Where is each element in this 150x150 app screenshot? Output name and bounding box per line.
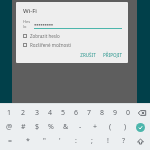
staticText: 1 — [7, 108, 12, 118]
button[interactable]: 7 — [83, 106, 96, 120]
button[interactable]: ) — [118, 120, 133, 134]
staticText: ' — [59, 136, 61, 146]
button[interactable]: ' — [52, 134, 68, 148]
staticText: * — [26, 136, 30, 146]
button[interactable]: ZRUŠIT — [79, 51, 97, 59]
button[interactable]: 4 — [44, 106, 57, 120]
staticText: Wi-Fi — [23, 7, 37, 15]
staticText: ZRUŠIT — [80, 52, 96, 58]
button[interactable]: Zobrazit heslo — [23, 33, 123, 39]
staticText: = — [8, 136, 13, 146]
button[interactable]: PŘIPOJIT — [102, 51, 123, 59]
button[interactable]: 1 — [2, 106, 16, 120]
button[interactable]: # — [16, 120, 30, 134]
button[interactable]: + — [88, 120, 103, 134]
button[interactable]: 3 — [30, 106, 44, 120]
staticText: # — [21, 122, 26, 132]
button[interactable]: ! — [100, 134, 116, 148]
button[interactable]: 2 — [16, 106, 30, 120]
button[interactable]: Hes — [23, 19, 122, 29]
staticText: 2 — [21, 108, 26, 118]
button[interactable]: ( — [103, 120, 118, 134]
staticText: 8 — [100, 108, 105, 118]
button[interactable]: 5 — [57, 106, 70, 120]
button[interactable]: ? — [116, 134, 132, 148]
button[interactable]: : — [68, 134, 84, 148]
button[interactable]: * — [19, 134, 36, 148]
staticText: ( — [109, 122, 112, 132]
staticText: 0 — [126, 108, 131, 118]
button[interactable]: & — [58, 120, 73, 134]
button[interactable]: Shift — [132, 134, 148, 148]
button[interactable]: $ — [30, 120, 44, 134]
staticText: 7 — [87, 108, 92, 118]
staticText: ) — [124, 122, 127, 132]
button[interactable]: Rozšířené možnosti — [23, 42, 123, 48]
button[interactable]: ; — [84, 134, 100, 148]
staticText: @ — [6, 122, 13, 132]
staticText: Zobrazit heslo — [30, 33, 60, 39]
staticText: ! — [107, 136, 109, 146]
staticText: 6 — [74, 108, 79, 118]
staticText: - — [79, 122, 82, 132]
staticText: % — [48, 122, 54, 132]
button[interactable]: - — [73, 120, 88, 134]
staticText: $ — [35, 122, 40, 132]
button[interactable]: Backspace — [135, 106, 148, 120]
button[interactable]: @ — [2, 120, 16, 134]
staticText: lo — [23, 24, 27, 29]
button[interactable]: " — [36, 134, 52, 148]
staticText: " — [43, 136, 46, 146]
button[interactable]: Enter — [133, 120, 148, 134]
staticText: ? — [122, 136, 126, 146]
button[interactable]: 0 — [122, 106, 135, 120]
staticText: : — [75, 136, 77, 146]
button[interactable]: = — [2, 134, 19, 148]
staticText: ; — [91, 136, 93, 146]
staticText: 4 — [48, 108, 53, 118]
staticText: Hes — [23, 19, 31, 24]
staticText: & — [63, 122, 69, 132]
staticText: 5 — [61, 108, 66, 118]
staticText: Rozšířené možnosti — [30, 42, 72, 48]
button[interactable]: % — [44, 120, 58, 134]
staticText: 3 — [35, 108, 40, 118]
staticText: 9 — [113, 108, 118, 118]
button[interactable]: 6 — [70, 106, 83, 120]
staticText: PŘIPOJIT — [103, 52, 122, 58]
button[interactable]: 8 — [96, 106, 109, 120]
staticText: + — [93, 122, 98, 132]
button[interactable]: 9 — [109, 106, 122, 120]
